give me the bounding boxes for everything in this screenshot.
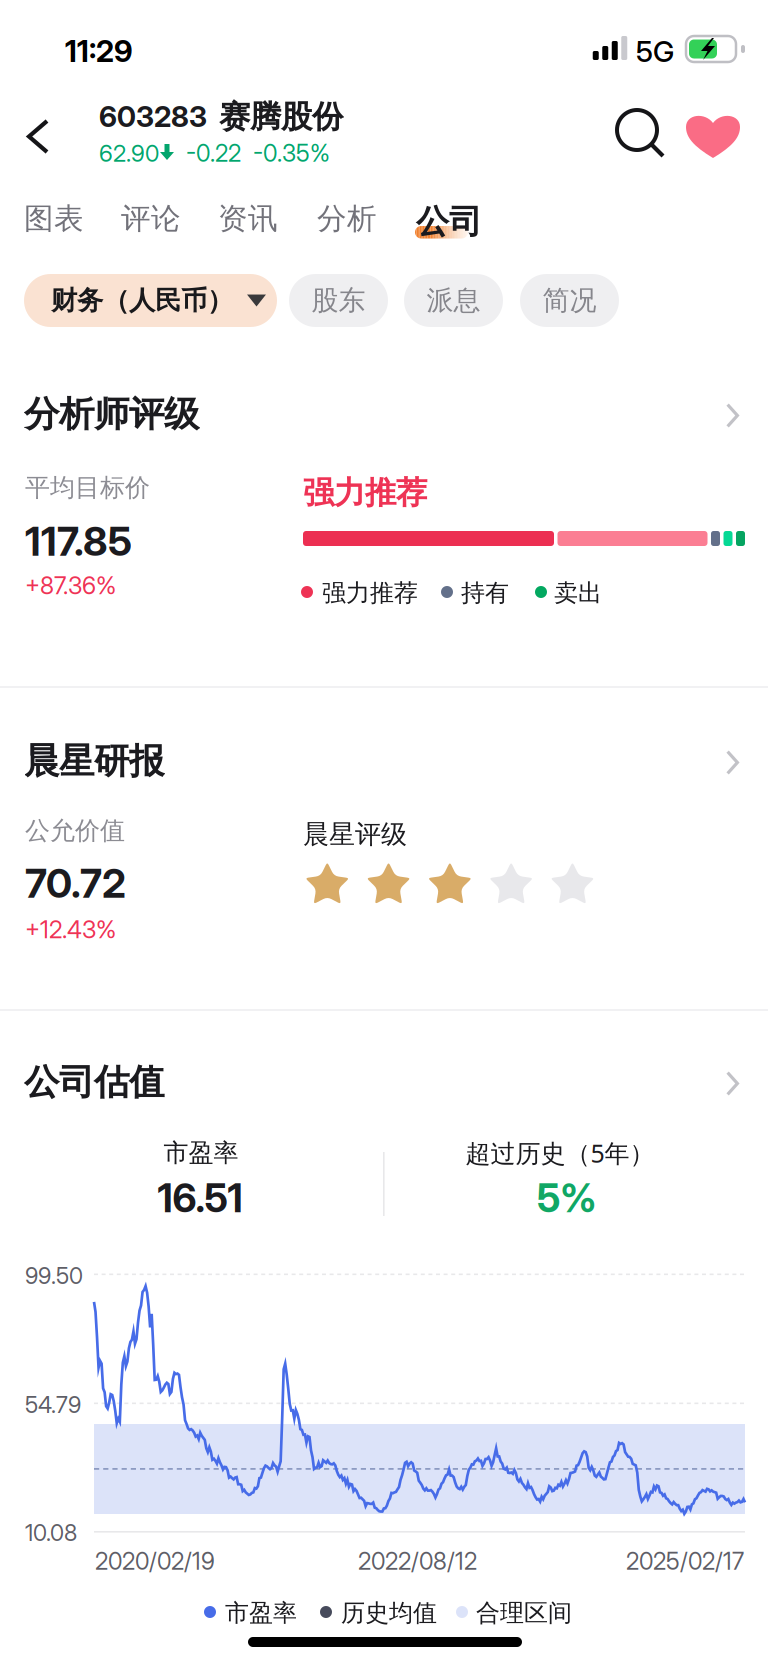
button[interactable]: 分析师评级 bbox=[0, 392, 768, 440]
staticText: 市盈率 bbox=[163, 1137, 238, 1169]
staticText: 历史均值 bbox=[341, 1598, 437, 1628]
staticText: 评论 bbox=[121, 200, 181, 237]
staticText: 99.50 bbox=[25, 1262, 83, 1290]
staticText: +12.43% bbox=[25, 915, 116, 944]
staticText: 晨星研报 bbox=[24, 739, 164, 784]
button[interactable]: 分析 bbox=[315, 198, 397, 256]
staticText: 市盈率 bbox=[225, 1598, 297, 1628]
staticText: 公允价值 bbox=[25, 815, 125, 846]
staticText: 62.90 bbox=[99, 139, 159, 167]
button[interactable]: 股东 bbox=[289, 274, 388, 327]
staticText: 分析师评级 bbox=[24, 392, 199, 437]
button[interactable]: Favorite bbox=[680, 105, 754, 171]
staticText: 2022/08/12 bbox=[358, 1547, 477, 1576]
staticText: 54.79 bbox=[25, 1391, 81, 1419]
staticText: 公司估值 bbox=[24, 1060, 164, 1105]
button[interactable]: 公司估值 bbox=[0, 1060, 768, 1108]
button[interactable]: Back bbox=[0, 100, 74, 174]
button[interactable]: 简况 bbox=[520, 274, 619, 327]
staticText: 简况 bbox=[542, 283, 596, 317]
staticText: 603283 bbox=[99, 99, 207, 134]
staticText: 公司 bbox=[416, 201, 482, 243]
staticText: 11:29 bbox=[65, 33, 133, 69]
button[interactable]: 资讯 bbox=[216, 198, 298, 256]
staticText: 117.85 bbox=[25, 517, 132, 565]
button[interactable]: Search bbox=[612, 105, 676, 169]
staticText: +87.36% bbox=[25, 571, 116, 600]
staticText: 2025/02/17 bbox=[626, 1547, 744, 1576]
staticText: 强力推荐 bbox=[303, 473, 427, 512]
staticText: 股东 bbox=[311, 283, 365, 317]
staticText: 财务（人民币） bbox=[51, 284, 233, 317]
staticText: 5G bbox=[636, 34, 674, 69]
staticText: 平均目标价 bbox=[25, 472, 150, 503]
staticText: 晨星评级 bbox=[303, 818, 407, 851]
button[interactable]: 财务（人民币） bbox=[24, 274, 277, 327]
staticText: 持有 bbox=[461, 578, 509, 608]
staticText: 16.51 bbox=[157, 1174, 242, 1222]
staticText: 图表 bbox=[24, 200, 84, 237]
button[interactable]: 晨星研报 bbox=[0, 739, 768, 787]
staticText: 2020/02/19 bbox=[95, 1547, 215, 1576]
staticText: 合理区间 bbox=[476, 1598, 572, 1628]
staticText: 70.72 bbox=[25, 859, 126, 907]
staticText: 5% bbox=[537, 1174, 597, 1222]
staticText: -0.22 -0.35% bbox=[186, 139, 330, 168]
staticText: 卖出 bbox=[554, 578, 602, 608]
staticText: 资讯 bbox=[218, 200, 278, 237]
button[interactable]: 评论 bbox=[119, 198, 201, 256]
staticText: 赛腾股份 bbox=[219, 97, 343, 136]
staticText: 派息 bbox=[426, 283, 480, 317]
staticText: 超过历史（5年） bbox=[465, 1136, 654, 1170]
staticText: 分析 bbox=[317, 200, 377, 237]
button[interactable]: 派息 bbox=[404, 274, 503, 327]
staticText: 10.08 bbox=[25, 1519, 77, 1547]
staticText: 强力推荐 bbox=[322, 578, 418, 608]
button[interactable]: 公司 bbox=[414, 201, 500, 253]
button[interactable]: 图表 bbox=[22, 198, 104, 256]
